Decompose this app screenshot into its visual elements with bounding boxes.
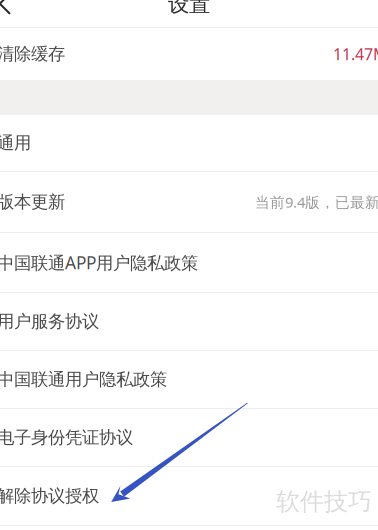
staticText: 中国联通APP用户隐私政策 bbox=[0, 251, 198, 274]
staticText: 版本更新 bbox=[0, 191, 65, 213]
staticText: 11.47MB bbox=[333, 43, 378, 65]
staticText: 设置 bbox=[168, 0, 210, 17]
button[interactable]: 解除协议授权 bbox=[0, 467, 378, 526]
button[interactable]: 版本更新 bbox=[0, 172, 378, 233]
button[interactable]: 电子身份凭证协议 bbox=[0, 409, 378, 467]
staticText: 清除缓存 bbox=[0, 43, 65, 65]
staticText: 电子身份凭证协议 bbox=[0, 427, 133, 448]
staticText: 当前9.4版，已最新 bbox=[255, 192, 378, 212]
button[interactable]: 中国联通APP用户隐私政策 bbox=[0, 233, 378, 293]
staticText: 软件技巧 bbox=[276, 487, 372, 516]
button[interactable]: 用户服务协议 bbox=[0, 293, 378, 351]
button[interactable]: 通用 bbox=[0, 115, 378, 172]
button[interactable]: 中国联通用户隐私政策 bbox=[0, 351, 378, 409]
staticText: 通用 bbox=[0, 132, 31, 154]
staticText: 用户服务协议 bbox=[0, 311, 99, 332]
button[interactable]: 清除缓存 bbox=[0, 28, 378, 80]
button[interactable]: Back bbox=[0, 0, 378, 530]
staticText: 解除协议授权 bbox=[0, 485, 99, 507]
staticText: 中国联通用户隐私政策 bbox=[0, 369, 167, 390]
